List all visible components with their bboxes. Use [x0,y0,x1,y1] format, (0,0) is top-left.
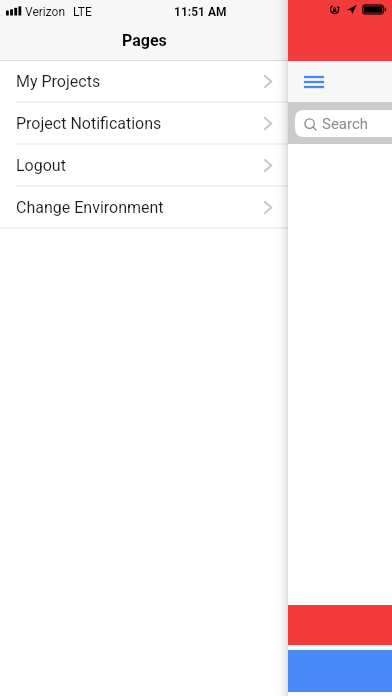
staticText: Change Environment [16,198,164,217]
button[interactable]: Search [295,110,392,137]
other: Location [347,4,357,15]
staticText: 11:51 AM [174,5,227,19]
staticText: Logout [16,156,66,175]
staticText: LTE [73,5,92,19]
staticText: Project Notifications [16,114,162,133]
button[interactable]: Change Environment [0,187,288,229]
other: Rotation lock [330,4,341,15]
button[interactable]: Logout [0,145,288,187]
other: Battery [362,4,387,15]
button[interactable]: My Projects [0,61,288,103]
staticText: Search [322,115,369,133]
button[interactable]: Open navigation menu [300,70,328,94]
staticText: My Projects [16,72,101,91]
staticText: Verizon [25,5,66,19]
button[interactable]: Project Notifications [0,103,288,145]
staticText: Pages [122,31,167,50]
